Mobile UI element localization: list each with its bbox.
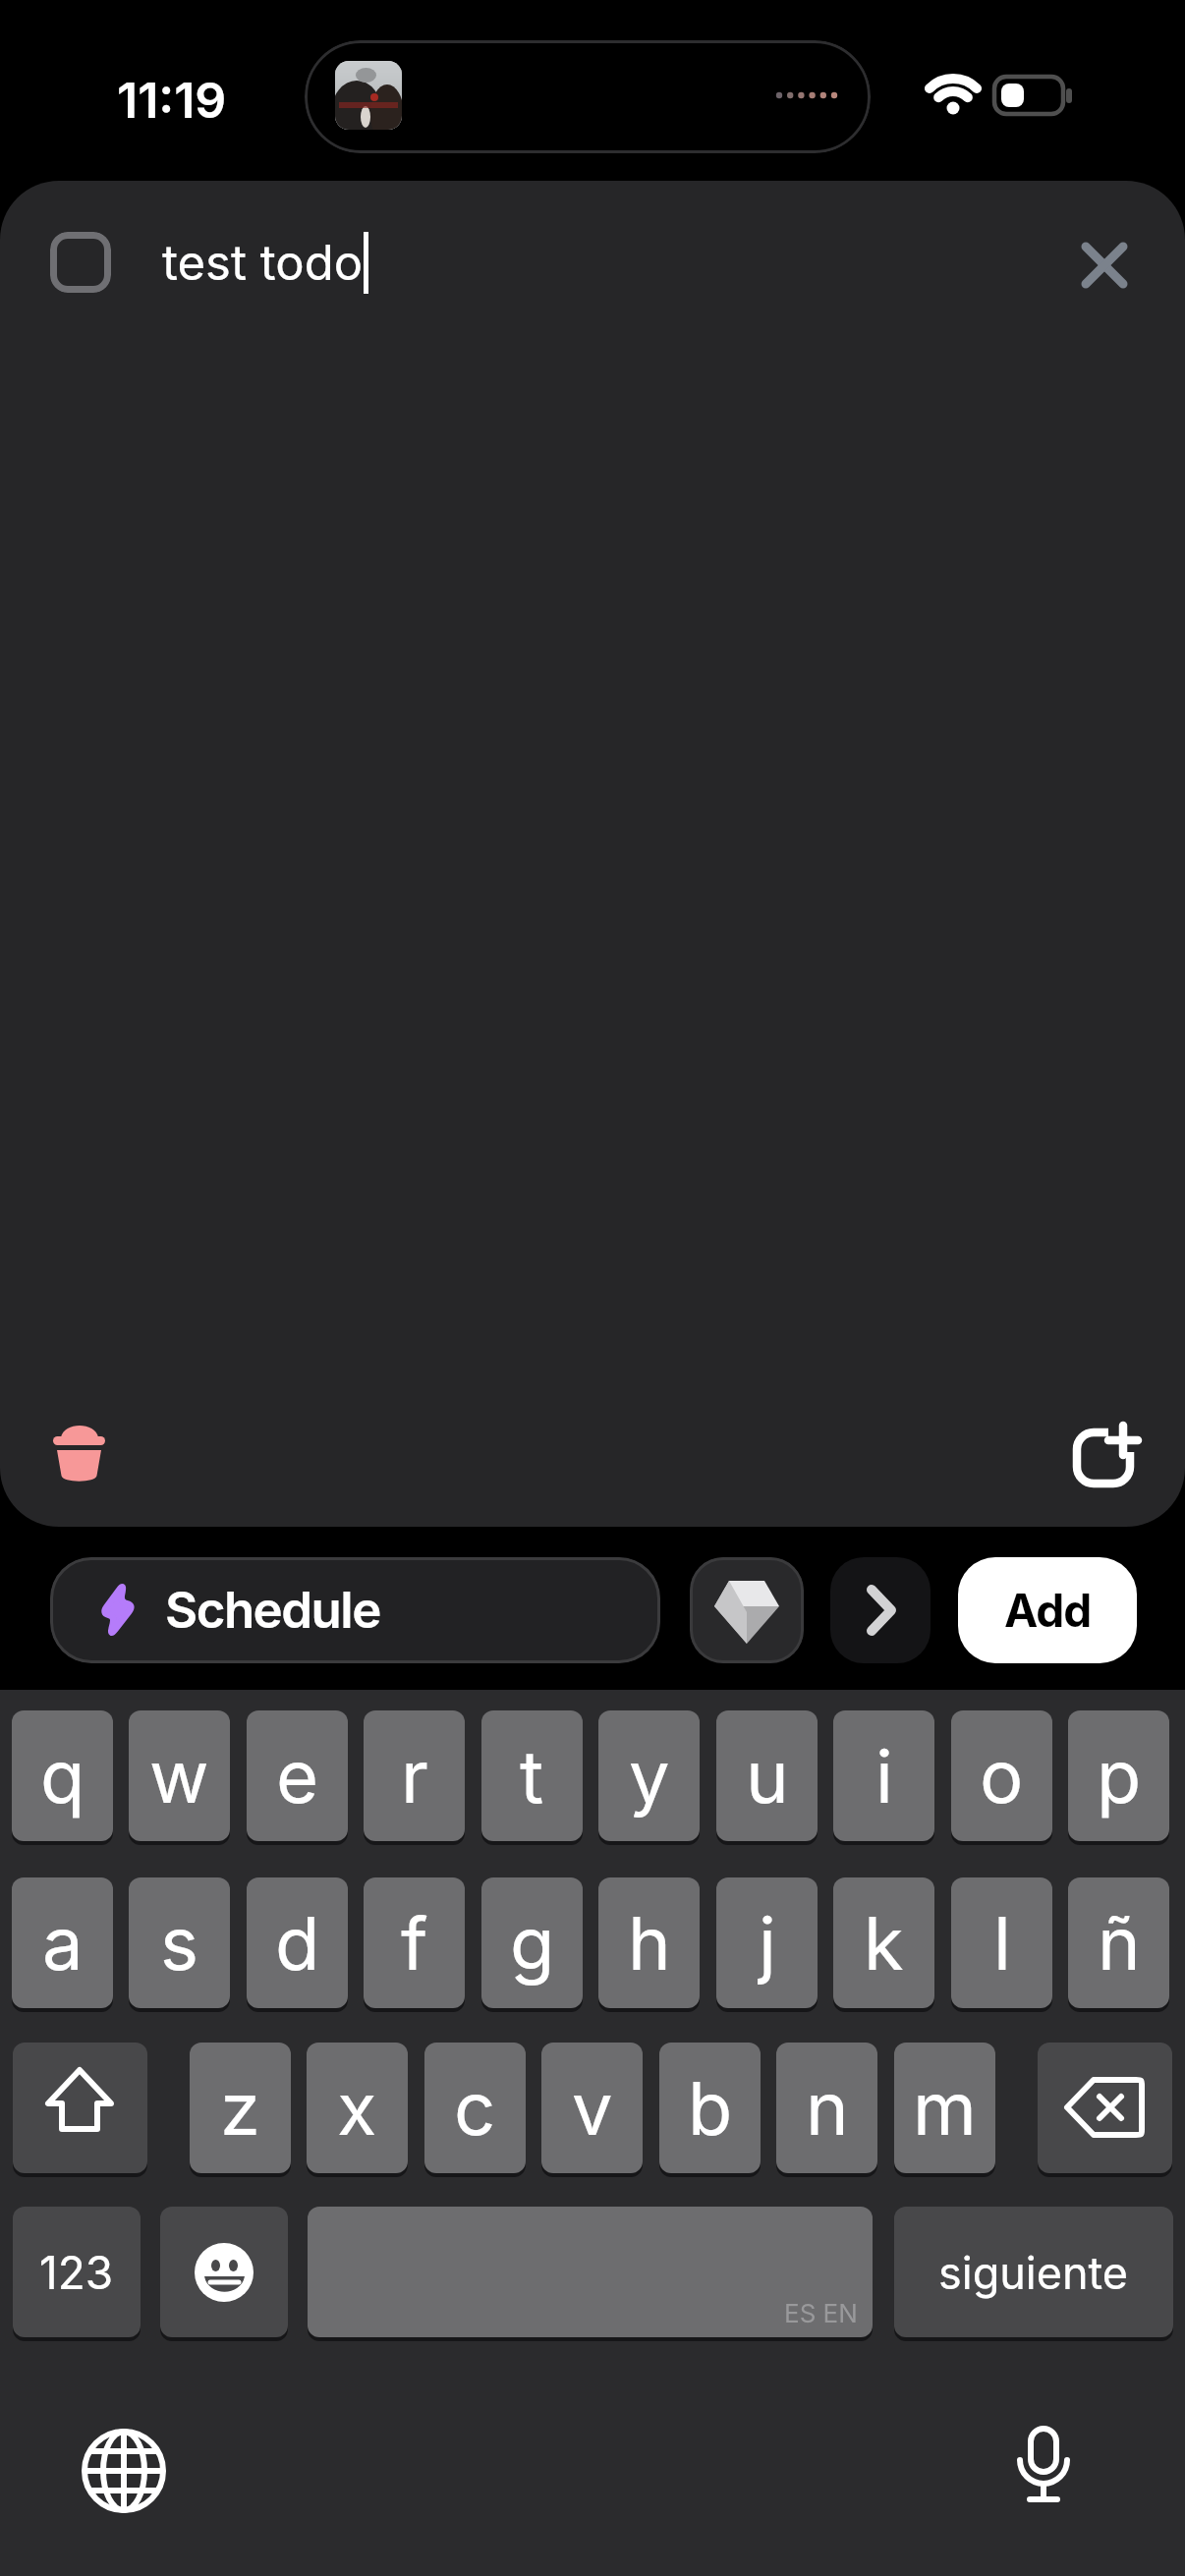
button[interactable]: l [951,1877,1052,2008]
button[interactable] [1059,1407,1150,1497]
button[interactable] [1038,2043,1172,2173]
button[interactable]: 123 [13,2207,141,2337]
staticText: ES EN [784,2298,858,2328]
button[interactable]: e [247,1710,348,1841]
button[interactable]: s [129,1877,230,2008]
button[interactable]: y [598,1710,700,1841]
staticText: f [401,1899,428,1988]
staticText: v [572,2064,613,2153]
button[interactable] [690,1557,804,1663]
staticText: d [275,1899,320,1988]
staticText: 11:19 [117,71,227,122]
button[interactable] [75,2422,173,2520]
staticText: o [980,1732,1024,1820]
button[interactable]: m [894,2043,995,2173]
button[interactable]: Add [958,1557,1137,1663]
button[interactable]: ñ [1068,1877,1169,2008]
staticText: i [875,1732,893,1820]
button[interactable]: siguiente [894,2207,1173,2337]
button[interactable]: d [247,1877,348,2008]
staticText: Add [1004,1583,1092,1638]
button[interactable]: n [776,2043,877,2173]
staticText: g [510,1899,555,1988]
staticText: q [40,1732,85,1820]
button[interactable] [50,232,111,293]
button[interactable]: Schedule [50,1557,660,1663]
staticText: u [746,1732,789,1820]
button[interactable]: t [481,1710,583,1841]
staticText: test todo [162,234,364,292]
button[interactable]: c [424,2043,526,2173]
button[interactable]: f [364,1877,465,2008]
button[interactable]: a [12,1877,113,2008]
button[interactable]: p [1068,1710,1169,1841]
staticText: Schedule [165,1580,380,1641]
button[interactable]: b [659,2043,761,2173]
staticText: p [1097,1732,1142,1820]
staticText: t [520,1732,544,1820]
button[interactable]: w [129,1710,230,1841]
button[interactable] [994,2419,1093,2517]
staticText: c [454,2064,496,2153]
button[interactable] [160,2207,288,2337]
button[interactable]: o [951,1710,1052,1841]
staticText: a [42,1899,84,1988]
button[interactable]: q [12,1710,113,1841]
staticText: h [628,1899,671,1988]
button[interactable]: v [541,2043,643,2173]
button[interactable]: x [307,2043,408,2173]
staticText: j [759,1899,776,1988]
button[interactable] [1067,228,1142,303]
staticText: siguiente [938,2246,1129,2299]
staticText: ñ [1098,1899,1141,1988]
staticText: w [149,1732,209,1820]
button[interactable] [13,2043,147,2173]
button[interactable]: j [716,1877,818,2008]
staticText: s [160,1899,199,1988]
staticText: 123 [39,2245,114,2300]
staticText: r [401,1732,428,1820]
staticText: k [864,1899,904,1988]
staticText: m [913,2064,977,2153]
button[interactable]: i [833,1710,934,1841]
button[interactable]: z [190,2043,291,2173]
staticText: l [993,1899,1011,1988]
button[interactable] [33,1409,124,1499]
staticText: e [276,1732,319,1820]
button[interactable]: ES EN [308,2207,873,2337]
staticText: n [806,2064,849,2153]
staticText: b [688,2064,733,2153]
button[interactable]: g [481,1877,583,2008]
button[interactable] [830,1557,931,1663]
staticText: z [220,2064,260,2153]
button[interactable]: k [833,1877,934,2008]
staticText: x [337,2064,377,2153]
button[interactable]: r [364,1710,465,1841]
staticText: y [629,1732,670,1820]
button[interactable]: h [598,1877,700,2008]
button[interactable]: u [716,1710,818,1841]
